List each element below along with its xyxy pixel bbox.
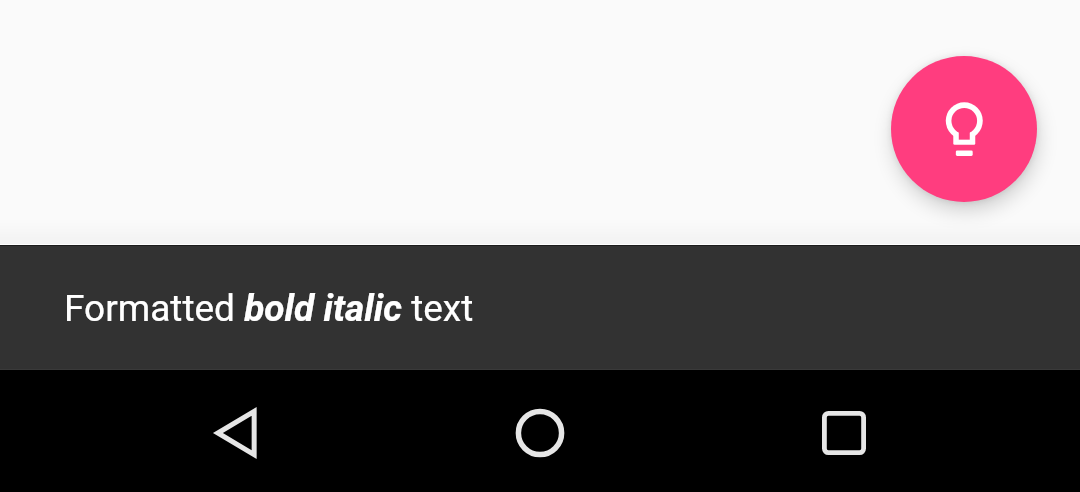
button[interactable]: Home: [388, 370, 692, 492]
staticText: Formatted bold italic text: [64, 287, 474, 330]
button[interactable]: Back: [84, 370, 388, 492]
button[interactable]: Idea: [891, 56, 1037, 202]
button[interactable]: Recent apps: [692, 370, 996, 492]
